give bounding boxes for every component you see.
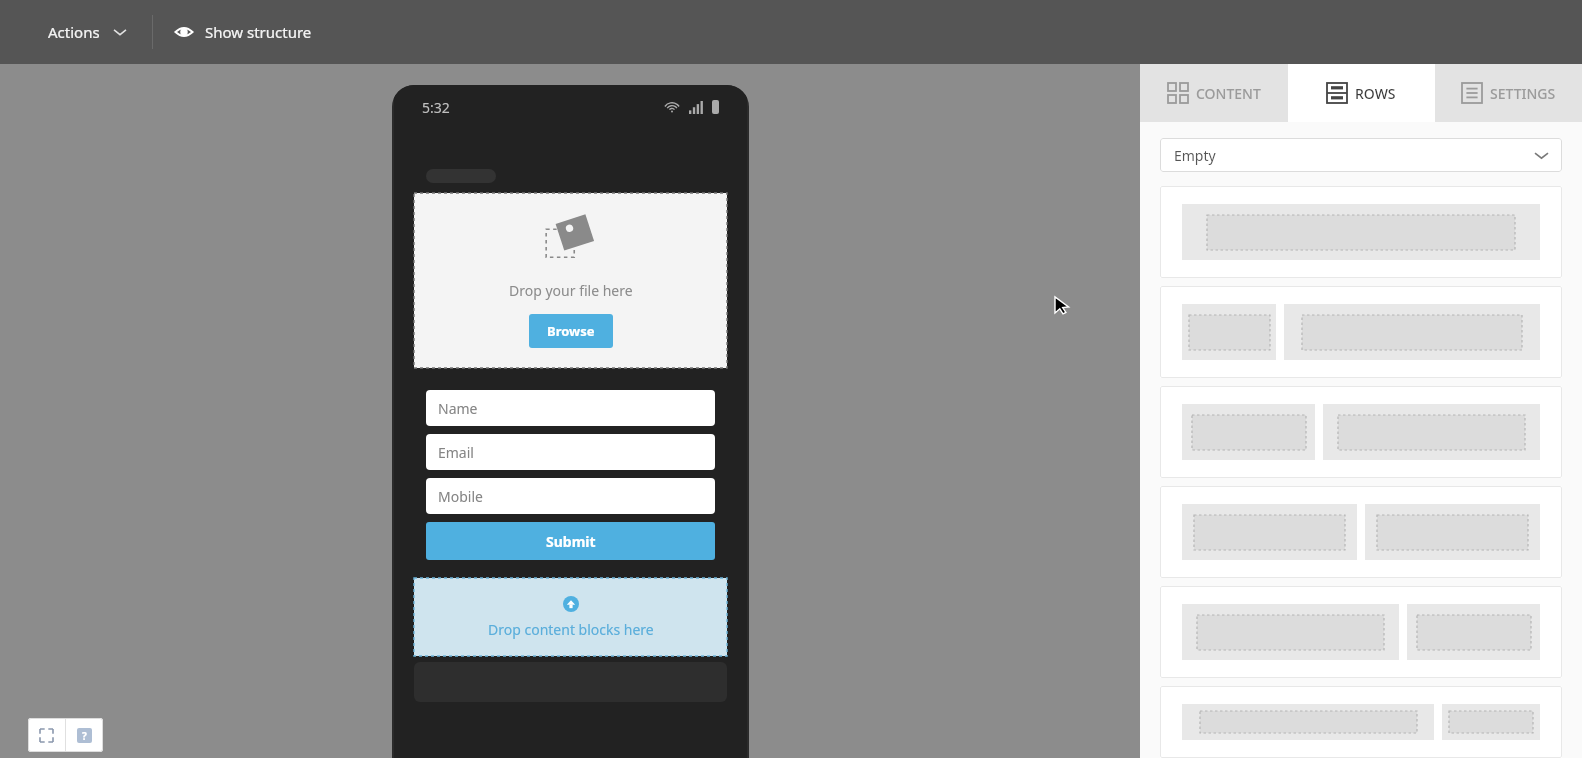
button[interactable]: CONTENT (1140, 64, 1288, 122)
button[interactable]: Drop your file here (414, 193, 727, 368)
button[interactable]: SETTINGS (1435, 64, 1582, 122)
button[interactable] (1160, 686, 1562, 758)
button[interactable]: Name (426, 390, 715, 426)
staticText: Drop your file here (509, 281, 633, 300)
staticText: Browse (547, 322, 595, 340)
staticText: Empty (1174, 146, 1216, 165)
staticText: Drop content blocks here (488, 620, 654, 639)
staticText: CONTENT (1196, 84, 1261, 103)
button[interactable]: ROWS (1288, 64, 1435, 122)
staticText: ? (82, 729, 87, 743)
button[interactable]: Browse (529, 314, 613, 348)
staticText: Show structure (205, 22, 312, 42)
button[interactable]: Email (426, 434, 715, 470)
staticText: Submit (546, 532, 596, 551)
button[interactable]: Drop content blocks here (414, 578, 727, 656)
button[interactable]: Help (66, 718, 103, 752)
staticText: ROWS (1355, 84, 1396, 103)
staticText: Mobile (438, 487, 483, 506)
button[interactable]: Fullscreen (28, 718, 65, 752)
button[interactable]: Show structure (161, 12, 326, 52)
staticText: Name (438, 399, 478, 418)
button[interactable] (1160, 486, 1562, 578)
button[interactable]: Mobile (426, 478, 715, 514)
button[interactable]: Empty (1160, 138, 1562, 172)
button[interactable] (1160, 586, 1562, 678)
button[interactable] (1160, 386, 1562, 478)
staticText: Actions (48, 22, 100, 42)
button[interactable] (1160, 286, 1562, 378)
staticText: SETTINGS (1490, 84, 1556, 103)
button[interactable] (1160, 186, 1562, 278)
staticText: 5:32 (422, 98, 450, 117)
button[interactable]: Submit (426, 522, 715, 560)
staticText: Email (438, 443, 474, 462)
button[interactable]: Actions (30, 12, 144, 52)
